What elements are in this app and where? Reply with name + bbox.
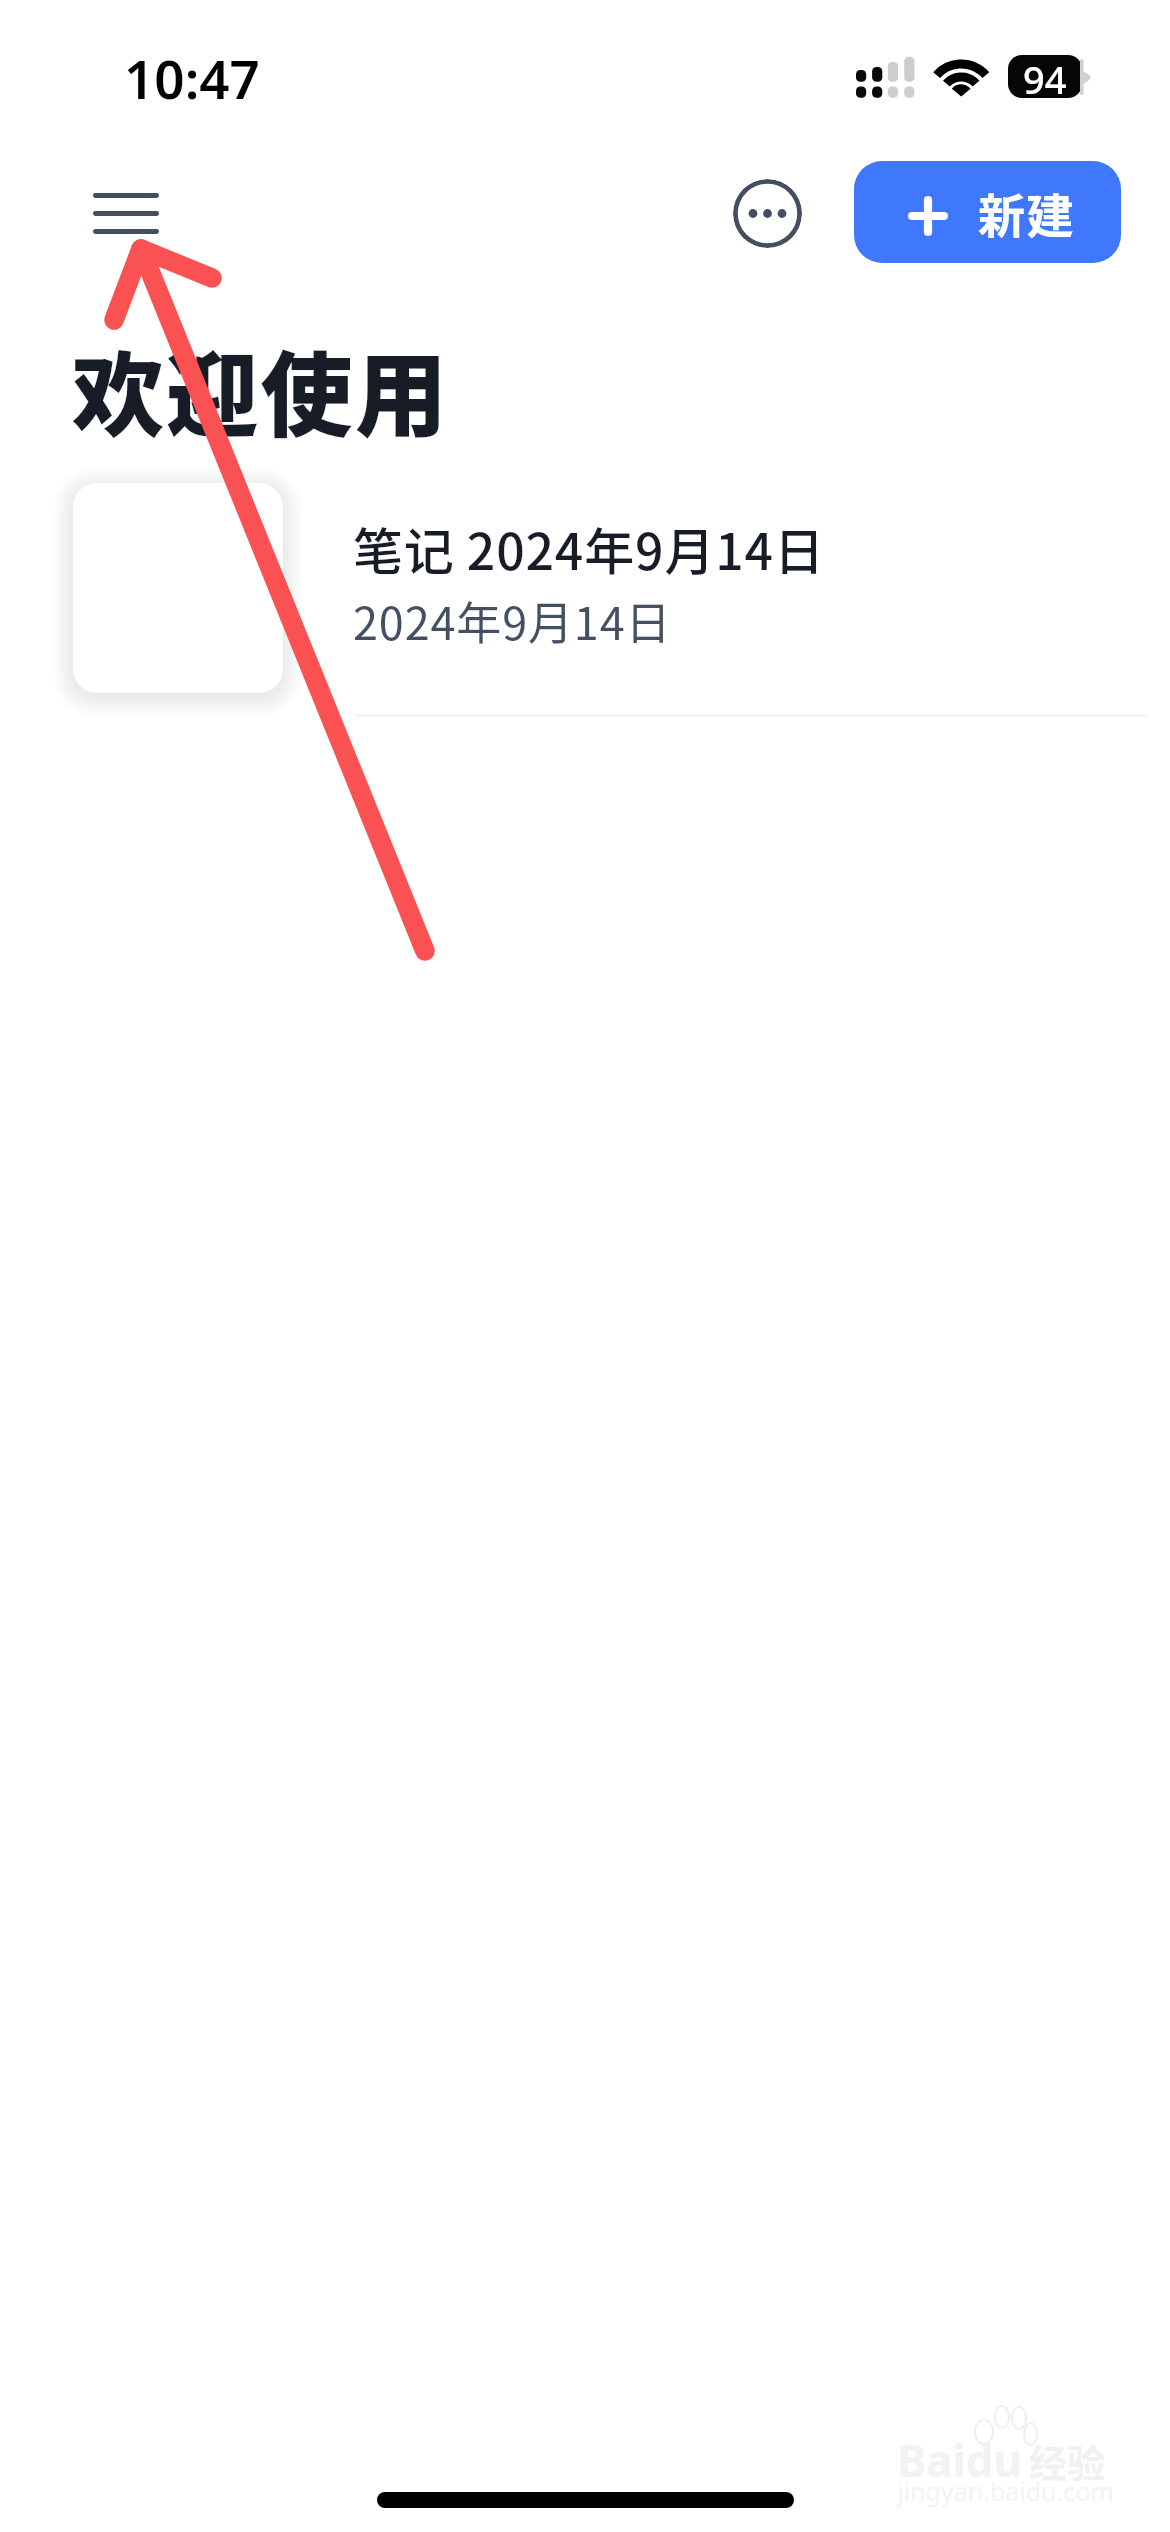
button[interactable]: More options — [733, 179, 802, 248]
staticText: Baidu — [897, 2430, 1023, 2490]
button[interactable]: Menu — [64, 166, 188, 260]
staticText: jingyan.baidu.com — [897, 2474, 1114, 2508]
staticText: 94 — [1023, 55, 1067, 96]
staticText: 2024年9月14日 — [353, 588, 672, 653]
staticText: 10:47 — [124, 42, 260, 114]
staticText: 新建 — [978, 178, 1076, 246]
staticText: 欢迎使用 — [72, 322, 450, 455]
staticText: 笔记 2024年9月14日 — [353, 512, 825, 584]
staticText: 经验 — [1029, 2433, 1106, 2488]
button[interactable]: 笔记 2024年9月14日 — [0, 460, 1170, 718]
button[interactable]: 新建 — [854, 161, 1121, 263]
